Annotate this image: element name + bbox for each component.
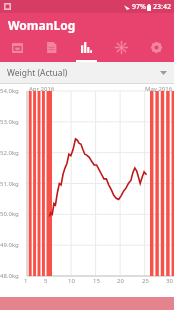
staticText: 48.0kg <box>0 272 19 280</box>
staticText: 97% <box>132 2 146 12</box>
staticText: 15 <box>93 277 100 285</box>
staticText: 53.0kg <box>0 118 19 126</box>
staticText: 54.0kg <box>0 87 19 95</box>
staticText: 5 <box>44 277 48 285</box>
staticText: 25 <box>142 277 149 285</box>
staticText: 49.0kg <box>0 241 19 249</box>
staticText: 10 <box>68 277 75 285</box>
button[interactable]: Notes <box>34 36 69 62</box>
staticText: WomanLog <box>8 17 76 33</box>
staticText: Weight (Actual) <box>7 67 68 79</box>
button[interactable]: Ovulation <box>104 36 139 62</box>
staticText: 30 <box>166 277 173 285</box>
staticText: 52.0kg <box>0 149 19 157</box>
staticText: Apr 2016 <box>29 85 55 93</box>
button[interactable]: Calendar <box>0 36 34 62</box>
staticText: 23:42 <box>153 2 171 12</box>
button[interactable]: Weight (Actual) <box>0 62 174 84</box>
button[interactable]: Charts <box>69 36 104 62</box>
staticText: 51.0kg <box>0 180 19 188</box>
button[interactable]: Settings <box>139 36 174 62</box>
staticText: 1 <box>24 277 28 285</box>
staticText: May 2016 <box>145 85 173 93</box>
staticText: 20 <box>117 277 124 285</box>
staticText: 50.0kg <box>0 210 19 218</box>
